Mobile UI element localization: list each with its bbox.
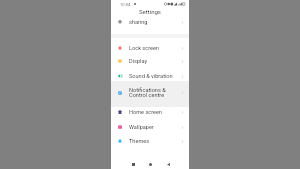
staticText: Settings: [139, 8, 161, 15]
button[interactable]: Wallpaper: [111, 120, 189, 134]
button[interactable]: Lock screen: [111, 41, 189, 55]
button[interactable]: Notifications & Control centre: [111, 80, 189, 105]
button[interactable]: sharing: [111, 15, 189, 29]
button[interactable]: Display: [111, 54, 189, 68]
staticText: Wallpaper: [129, 124, 154, 131]
staticText: Themes: [129, 138, 150, 145]
staticText: Sound & vibration: [129, 73, 173, 80]
button[interactable]: Recent apps: [127, 158, 139, 169]
staticText: Display: [129, 58, 148, 65]
staticText: sharing: [129, 19, 148, 26]
button[interactable]: Themes: [111, 134, 189, 148]
button[interactable]: Home: [144, 158, 156, 169]
staticText: Notifications & Control centre: [129, 87, 166, 99]
button[interactable]: Back: [162, 158, 174, 169]
staticText: Lock screen: [129, 45, 160, 52]
staticText: 10:04: [120, 2, 131, 7]
staticText: Home screen: [129, 109, 163, 116]
button[interactable]: Home screen: [111, 105, 189, 119]
button[interactable]: Sound & vibration: [111, 69, 189, 83]
